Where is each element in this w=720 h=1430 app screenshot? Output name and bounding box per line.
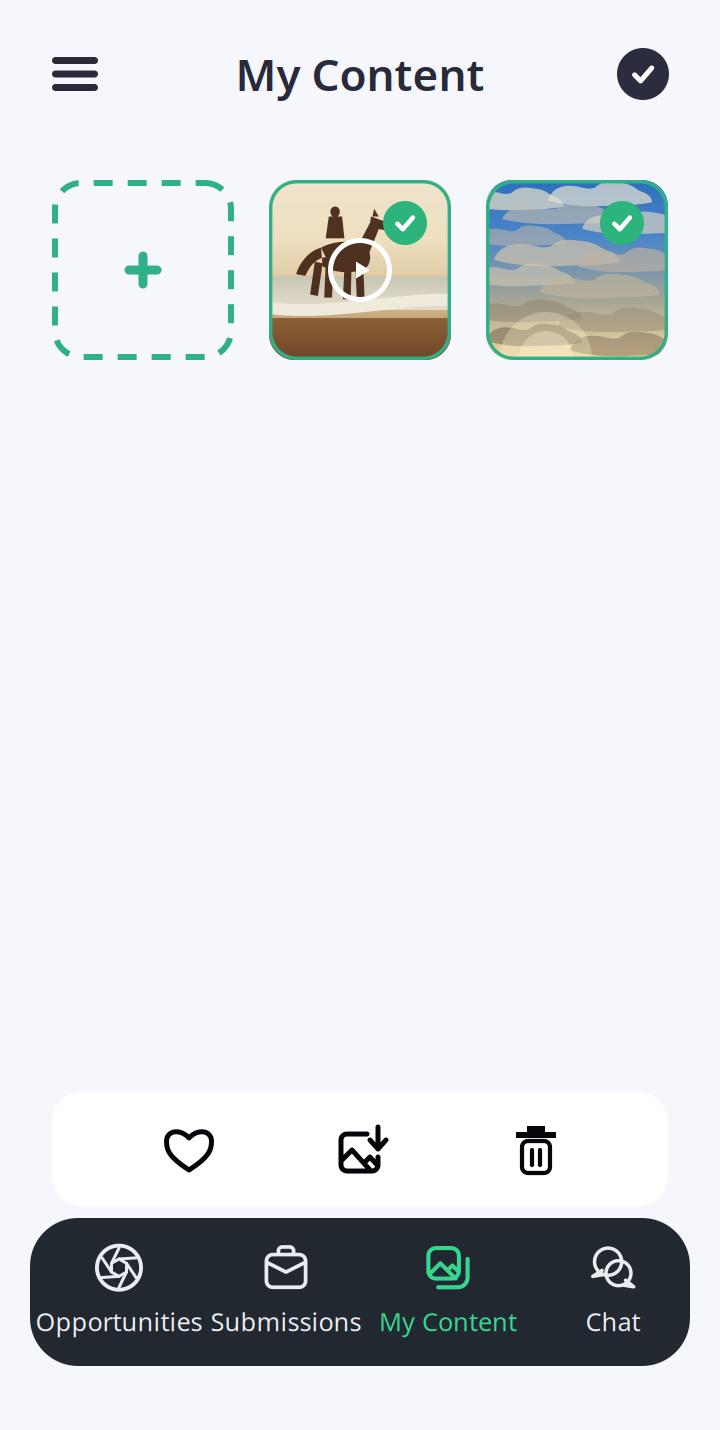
button[interactable]: Add content [52, 180, 234, 360]
button[interactable]: Menu [29, 28, 121, 120]
button[interactable]: Photo, selected [486, 180, 668, 360]
button[interactable]: Favorite [130, 1092, 248, 1206]
button[interactable]: Video, selected [269, 180, 451, 360]
button[interactable]: Opportunities [30, 1236, 208, 1346]
staticText: Opportunities [35, 1305, 202, 1338]
button[interactable]: Download [303, 1092, 421, 1206]
staticText: Submissions [210, 1305, 361, 1338]
button[interactable]: My Content [373, 1236, 523, 1346]
button[interactable]: Delete [477, 1092, 595, 1206]
button[interactable]: Chat [558, 1236, 668, 1346]
staticText: My Content [379, 1305, 517, 1338]
button[interactable]: Confirm selection [597, 28, 689, 120]
staticText: Chat [585, 1305, 640, 1338]
staticText: My Content [235, 45, 484, 103]
button[interactable]: Submissions [206, 1236, 366, 1346]
